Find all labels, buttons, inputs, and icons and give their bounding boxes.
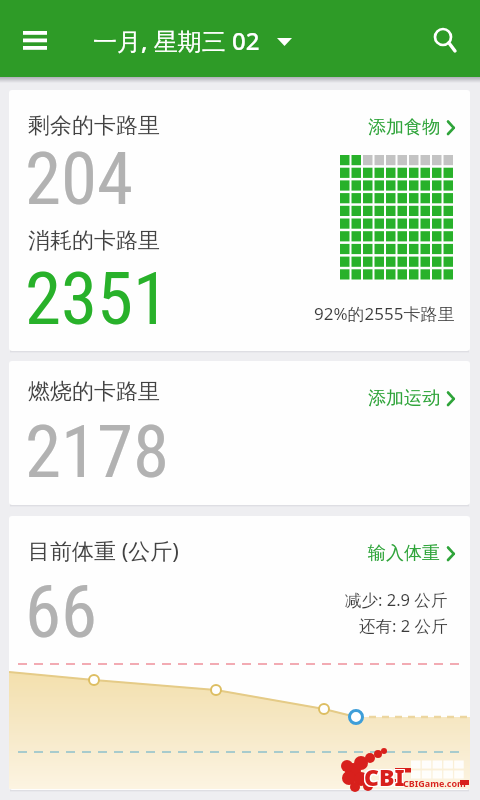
staticText: CBI bbox=[363, 762, 404, 793]
staticText: 输入体重 bbox=[368, 542, 440, 565]
staticText: CBI bbox=[363, 760, 404, 791]
staticText: CBI bbox=[364, 762, 405, 793]
button[interactable] bbox=[13, 26, 57, 54]
staticText: CBI bbox=[364, 761, 405, 792]
staticText: 204 bbox=[25, 136, 134, 222]
staticText: 目前体重 (公斤) bbox=[28, 535, 179, 565]
staticText: 92%的2555卡路里 bbox=[314, 302, 455, 325]
staticText: 剩余的卡路里 bbox=[28, 112, 160, 140]
staticText: 消耗的卡路里 bbox=[28, 227, 160, 255]
staticText: 还有: 2 公斤 bbox=[359, 614, 448, 637]
staticText: CBI bbox=[364, 760, 405, 791]
staticText: CBI bbox=[365, 760, 406, 791]
button[interactable]: 添加运动 bbox=[368, 387, 455, 410]
button[interactable]: 一月, 星期三 02 bbox=[93, 24, 260, 57]
staticText: CBI bbox=[363, 761, 404, 792]
staticText: 2178 bbox=[25, 409, 170, 495]
button[interactable] bbox=[428, 22, 462, 56]
button[interactable]: 输入体重 bbox=[368, 542, 455, 565]
staticText: 燃烧的卡路里 bbox=[28, 378, 160, 406]
staticText: 添加食物 bbox=[368, 116, 440, 139]
staticText: 减少: 2.9 公斤 bbox=[345, 588, 448, 611]
staticText: 66 bbox=[25, 569, 98, 655]
staticText: CBI bbox=[365, 762, 406, 793]
staticText: 添加运动 bbox=[368, 387, 440, 410]
staticText: CBI bbox=[365, 761, 406, 792]
staticText: CBIGame.com bbox=[403, 777, 466, 789]
staticText: 2351 bbox=[25, 256, 170, 342]
button[interactable]: 添加食物 bbox=[368, 116, 455, 139]
